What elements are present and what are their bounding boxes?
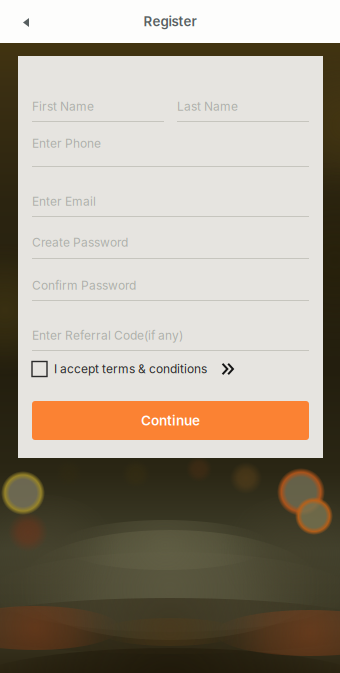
staticText: Register [143,13,196,29]
staticText: Enter Email [32,194,96,208]
staticText: Continue [141,412,200,429]
button[interactable]: View terms and conditions [221,358,234,380]
staticText: Last Name [177,99,238,113]
staticText: First Name [32,99,94,113]
button[interactable]: Back [6,0,34,43]
button[interactable]: Continue [32,401,309,440]
staticText: Enter Referral Code(if any) [32,328,183,342]
staticText: Confirm Password [32,278,136,292]
staticText: Enter Phone [32,136,101,150]
staticText: Create Password [32,235,128,249]
button[interactable]: I accept terms & conditions [32,358,207,380]
staticText: I accept terms & conditions [54,362,207,376]
